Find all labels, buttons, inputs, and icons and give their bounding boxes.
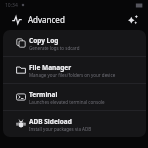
staticText: File Manager xyxy=(29,63,72,72)
staticText: Manage your files/folders on your device xyxy=(29,72,116,78)
button[interactable]: AI assistant xyxy=(124,10,142,28)
button[interactable]: Copy Log xyxy=(3,30,146,56)
staticText: Generate logs to sdcard xyxy=(29,45,80,51)
button[interactable]: Terminal xyxy=(3,84,146,110)
staticText: Advanced xyxy=(28,14,65,25)
staticText: 10:34 xyxy=(5,2,18,9)
staticText: Launches elevated terminal console xyxy=(29,99,105,105)
staticText: ADB Sideload xyxy=(29,117,72,126)
staticText: Copy Log xyxy=(29,36,59,45)
button[interactable]: Advanced xyxy=(8,11,25,28)
staticText: Install your packages via ADB xyxy=(29,126,92,132)
staticText: Terminal xyxy=(29,90,58,99)
button[interactable]: ADB Sideload xyxy=(3,111,146,137)
button[interactable]: File Manager xyxy=(3,57,146,83)
